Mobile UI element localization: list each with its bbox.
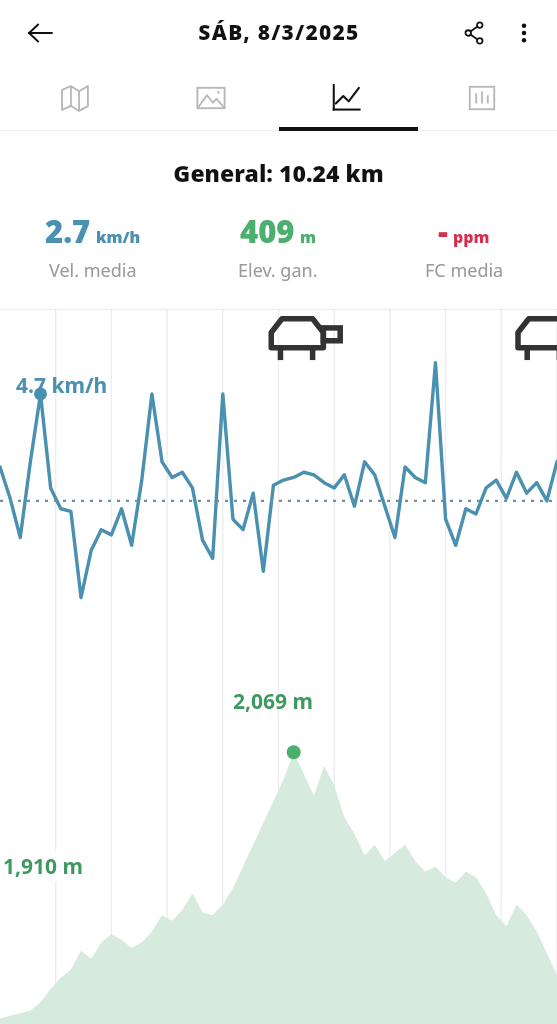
button[interactable]: Map	[15, 65, 135, 131]
staticText: 4.7 km/h	[16, 371, 108, 400]
staticText: SÁB, 8/3/2025	[198, 18, 360, 47]
staticText: FC media	[425, 258, 504, 283]
staticText: -	[438, 210, 448, 252]
staticText: m	[300, 226, 317, 248]
staticText: 2.7	[45, 210, 91, 252]
button[interactable]: Back	[14, 7, 66, 59]
staticText: 409	[240, 210, 295, 252]
staticText: 1,910 m	[3, 852, 83, 881]
button[interactable]: More options	[499, 8, 549, 58]
staticText: ppm	[453, 226, 490, 248]
button[interactable]: Charts	[286, 65, 406, 131]
staticText: 2,069 m	[233, 687, 313, 716]
button[interactable]: Statistics	[422, 65, 542, 131]
button[interactable]: -	[371, 210, 557, 283]
staticText: General: 10.24 km	[173, 157, 384, 188]
staticText: Elev. gan.	[238, 258, 318, 283]
staticText: Vel. media	[49, 258, 137, 283]
button[interactable]: 409	[185, 210, 371, 283]
button[interactable]: Photos	[151, 65, 271, 131]
button[interactable]: 2.7	[0, 210, 185, 283]
button[interactable]: Share	[449, 8, 499, 58]
staticText: km/h	[96, 226, 141, 248]
